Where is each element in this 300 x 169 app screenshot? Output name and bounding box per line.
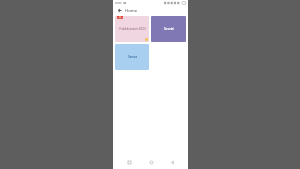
button[interactable]: Recents (124, 157, 134, 167)
staticText: Pubblicazioni 2023 (119, 27, 146, 31)
button[interactable]: Back (167, 157, 177, 167)
staticText: Servizi (164, 27, 174, 31)
staticText: Home (125, 8, 138, 14)
button[interactable]: Home (146, 157, 156, 167)
button[interactable]: Back (116, 7, 123, 14)
button[interactable]: Pubblicazioni 2023 (115, 16, 149, 42)
staticText: Senza (128, 55, 137, 59)
button[interactable]: Servizi (151, 16, 186, 42)
button[interactable]: Home (125, 8, 138, 14)
button[interactable]: Senza (115, 44, 149, 70)
